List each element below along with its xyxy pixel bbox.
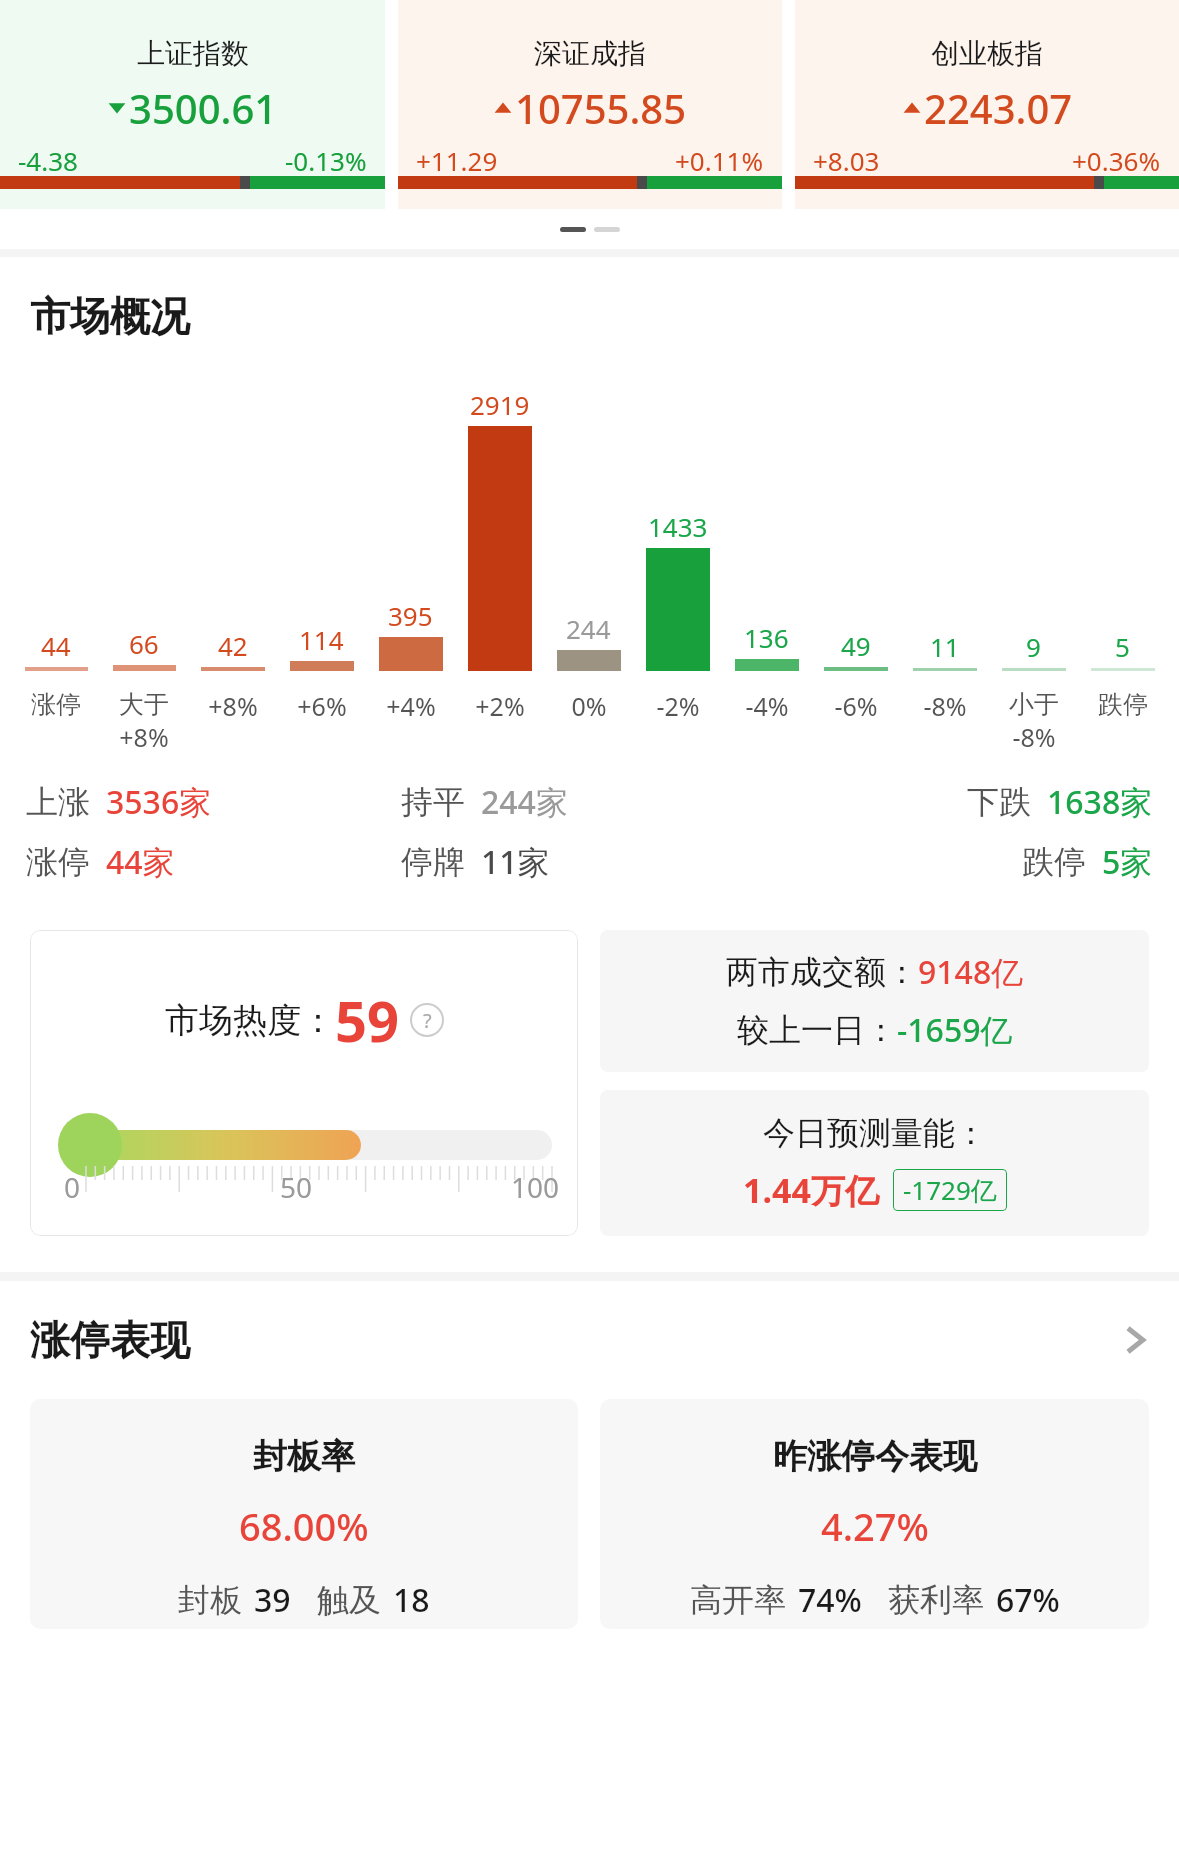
staticText: +11.29 — [416, 143, 498, 178]
staticText: -2% — [656, 689, 700, 723]
button[interactable]: 深证成指 — [398, 0, 782, 209]
staticText: 2919 — [470, 387, 530, 422]
staticText: 跌停 — [1022, 842, 1086, 882]
other: 更多 — [1121, 1319, 1149, 1361]
staticText: 大于 — [119, 689, 169, 720]
staticText: +4% — [386, 689, 436, 723]
staticText: +0.36% — [1072, 143, 1161, 178]
staticText: 涨停 — [26, 842, 90, 882]
staticText: +6% — [297, 689, 347, 723]
staticText: 持平 — [401, 782, 465, 822]
staticText: +8.03 — [813, 143, 880, 178]
staticText: 100 — [511, 1168, 560, 1206]
staticText: 涨停 — [31, 689, 81, 720]
staticText: 昨涨停今表现 — [773, 1435, 977, 1478]
staticText: 244 — [566, 611, 611, 646]
staticText: 封板率 — [253, 1435, 355, 1478]
staticText: -1729亿 — [903, 1172, 997, 1208]
staticText: 44家 — [106, 840, 175, 884]
staticText: 74% — [798, 1578, 862, 1622]
staticText: 市场概况 — [30, 291, 190, 341]
staticText: 9148亿 — [918, 950, 1024, 994]
staticText: ? — [423, 1007, 432, 1034]
staticText: 11 — [930, 629, 960, 664]
staticText: +8% — [208, 689, 258, 723]
staticText: 11家 — [481, 840, 550, 884]
staticText: -8% — [923, 689, 967, 723]
staticText: +0.11% — [675, 143, 764, 178]
staticText: 59 — [335, 982, 400, 1058]
staticText: 市场热度： — [165, 999, 335, 1042]
staticText: -6% — [834, 689, 878, 723]
staticText: 68.00% — [239, 1500, 369, 1552]
staticText: 10755.85 — [515, 81, 687, 135]
staticText: 49 — [841, 628, 871, 663]
button[interactable]: 两市成交额： — [600, 930, 1149, 1072]
staticText: 44 — [41, 628, 71, 663]
staticText: 244家 — [481, 780, 568, 824]
staticText: 5家 — [1102, 840, 1153, 884]
staticText: -4% — [745, 689, 789, 723]
staticText: 66 — [129, 626, 159, 661]
button[interactable]: 市场热度： — [30, 930, 578, 1236]
staticText: 114 — [299, 622, 344, 657]
button[interactable]: 封板率 — [30, 1399, 578, 1629]
staticText: 67% — [996, 1578, 1060, 1622]
button[interactable]: 涨停表现 — [30, 1315, 1149, 1365]
staticText: 9 — [1026, 629, 1041, 664]
staticText: 停牌 — [401, 842, 465, 882]
button[interactable]: 说明 — [410, 1003, 444, 1037]
staticText: 2243.07 — [924, 81, 1073, 135]
staticText: -8% — [1012, 720, 1056, 754]
staticText: 触及 — [317, 1580, 381, 1620]
staticText: +2% — [475, 689, 525, 723]
staticText: 上证指数 — [137, 36, 249, 71]
staticText: 50 — [280, 1168, 313, 1206]
staticText: 4.27% — [821, 1500, 929, 1552]
staticText: 1.44万亿 — [743, 1167, 879, 1213]
button[interactable]: 创业板指 — [795, 0, 1179, 209]
staticText: 获利率 — [888, 1580, 984, 1620]
staticText: 1638家 — [1047, 780, 1153, 824]
staticText: 两市成交额： — [726, 952, 918, 992]
button[interactable]: 昨涨停今表现 — [600, 1399, 1149, 1629]
staticText: 136 — [744, 620, 789, 655]
staticText: 5 — [1115, 629, 1130, 664]
staticText: 18 — [393, 1578, 430, 1622]
staticText: 下跌 — [967, 782, 1031, 822]
staticText: 0 — [64, 1168, 81, 1206]
staticText: 今日预测量能： — [763, 1113, 987, 1153]
staticText: 上涨 — [26, 782, 90, 822]
button[interactable]: 上证指数 — [0, 0, 385, 209]
staticText: -0.13% — [285, 143, 367, 178]
staticText: 高开率 — [690, 1580, 786, 1620]
button[interactable]: 今日预测量能： — [600, 1090, 1149, 1236]
staticText: 42 — [218, 628, 248, 663]
staticText: 395 — [388, 598, 433, 633]
staticText: +8% — [119, 720, 169, 754]
staticText: -1659亿 — [897, 1008, 1013, 1052]
staticText: 小于 — [1009, 689, 1059, 720]
staticText: 3536家 — [106, 780, 212, 824]
staticText: 较上一日： — [737, 1010, 897, 1050]
staticText: 3500.61 — [129, 81, 278, 135]
staticText: 创业板指 — [931, 36, 1043, 71]
staticText: 0% — [571, 689, 607, 723]
staticText: -4.38 — [18, 143, 78, 178]
staticText: 1433 — [648, 509, 708, 544]
staticText: 39 — [254, 1578, 291, 1622]
staticText: 深证成指 — [534, 36, 646, 71]
staticText: 封板 — [178, 1580, 242, 1620]
staticText: 涨停表现 — [30, 1315, 190, 1365]
staticText: 跌停 — [1098, 689, 1148, 720]
